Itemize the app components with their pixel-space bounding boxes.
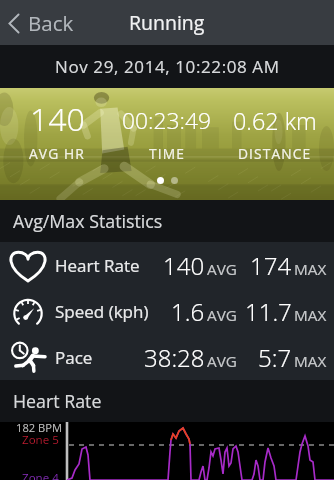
staticText: 00:23:49 <box>122 105 211 136</box>
button[interactable]: Back <box>0 1 88 45</box>
button[interactable]: Speed (kph) <box>0 288 334 334</box>
staticText: Zone 5 <box>22 432 59 448</box>
staticText: 140 <box>30 97 85 141</box>
staticText: AVG <box>207 259 237 280</box>
staticText: Pace <box>55 346 93 369</box>
staticText: AVG <box>207 305 237 326</box>
staticText: AVG HR <box>29 144 85 163</box>
staticText: Running <box>129 9 205 36</box>
staticText: 1.6 <box>171 295 205 328</box>
staticText: Heart Rate <box>13 389 102 413</box>
staticText: Heart Rate <box>55 254 140 277</box>
staticText: TIME <box>149 144 185 163</box>
staticText: MAX <box>294 351 327 372</box>
staticText: Avg/Max Statistics <box>13 209 163 233</box>
staticText: Zone 4 <box>22 470 59 480</box>
staticText: 182 BPM <box>16 420 63 435</box>
staticText: 38:28 <box>144 341 205 374</box>
staticText: 140 <box>163 249 205 282</box>
staticText: 11.7 <box>245 295 292 328</box>
staticText: 5:7 <box>258 341 292 374</box>
staticText: DISTANCE <box>238 144 312 163</box>
staticText: AVG <box>207 351 237 372</box>
button[interactable]: Heart Rate <box>0 242 334 288</box>
staticText: 174 <box>250 249 292 282</box>
staticText: 0.62 km <box>233 105 317 137</box>
staticText: Nov 29, 2014, 10:22:08 AM <box>55 55 280 78</box>
staticText: MAX <box>294 259 327 280</box>
staticText: Speed (kph) <box>55 300 149 323</box>
button[interactable]: Pace <box>0 334 334 380</box>
staticText: Back <box>28 9 74 37</box>
staticText: MAX <box>294 305 327 326</box>
